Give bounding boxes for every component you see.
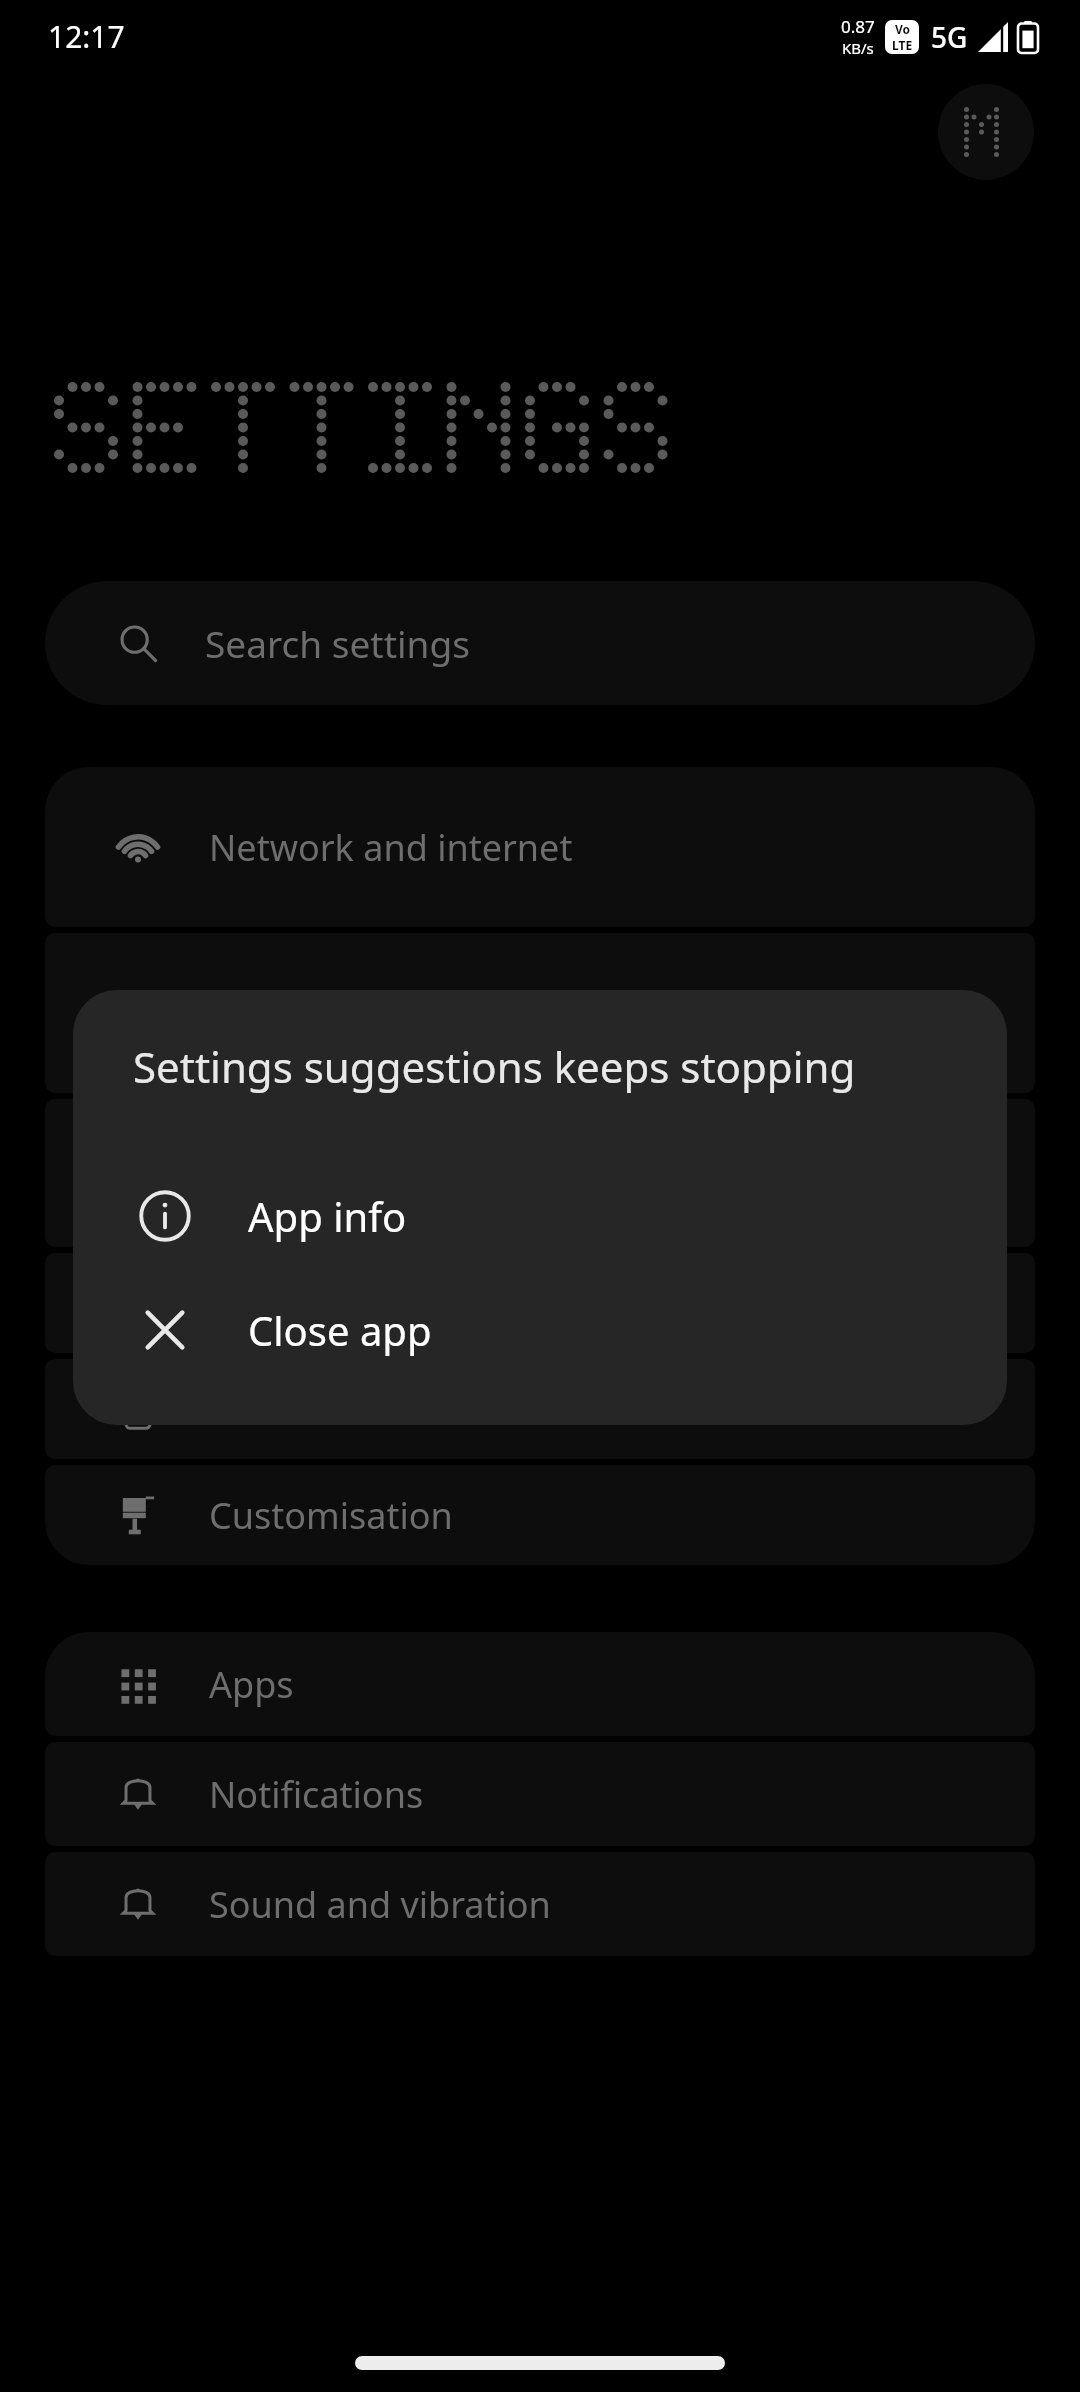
button[interactable]: Wallpaper and style — [45, 1099, 1035, 1247]
staticText: 0.87 — [841, 15, 875, 38]
staticText: KB/s — [842, 38, 874, 58]
button[interactable]: Account — [938, 84, 1034, 180]
button[interactable]: Close app — [73, 1271, 1007, 1389]
button[interactable]: Intelligence toolkit — [45, 1253, 1035, 1353]
staticText: Network and internet — [209, 823, 573, 872]
button[interactable]: App info — [73, 1161, 1007, 1271]
button[interactable]: Notifications — [45, 1742, 1035, 1846]
staticText: Notifications — [209, 1770, 424, 1819]
staticText: Connected devices — [209, 989, 525, 1038]
staticText: Sound and vibration — [209, 1880, 551, 1929]
staticText: Apps — [209, 1660, 294, 1709]
staticText: Search settings — [205, 618, 470, 668]
button[interactable]: Connected devices — [45, 933, 1035, 1093]
staticText: Intelligence toolkit — [209, 1279, 524, 1328]
staticText: Customisation — [209, 1491, 453, 1540]
button[interactable]: Network and internet — [45, 767, 1035, 927]
button[interactable]: Sound and vibration — [45, 1852, 1035, 1956]
button[interactable]: Lock screen — [45, 1359, 1035, 1459]
staticText: Close app — [248, 1303, 432, 1357]
button[interactable]: Customisation — [45, 1465, 1035, 1565]
staticText: LTE — [892, 37, 913, 53]
staticText: Settings suggestions keeps stopping — [133, 1038, 856, 1095]
staticText: 12:17 — [48, 16, 125, 57]
staticText: App info — [248, 1189, 407, 1243]
staticText: Vo — [895, 21, 911, 37]
button[interactable]: Apps — [45, 1632, 1035, 1736]
staticText: Lock screen — [209, 1385, 408, 1434]
staticText: 5G — [931, 18, 968, 56]
button[interactable]: Search settings — [45, 581, 1035, 705]
